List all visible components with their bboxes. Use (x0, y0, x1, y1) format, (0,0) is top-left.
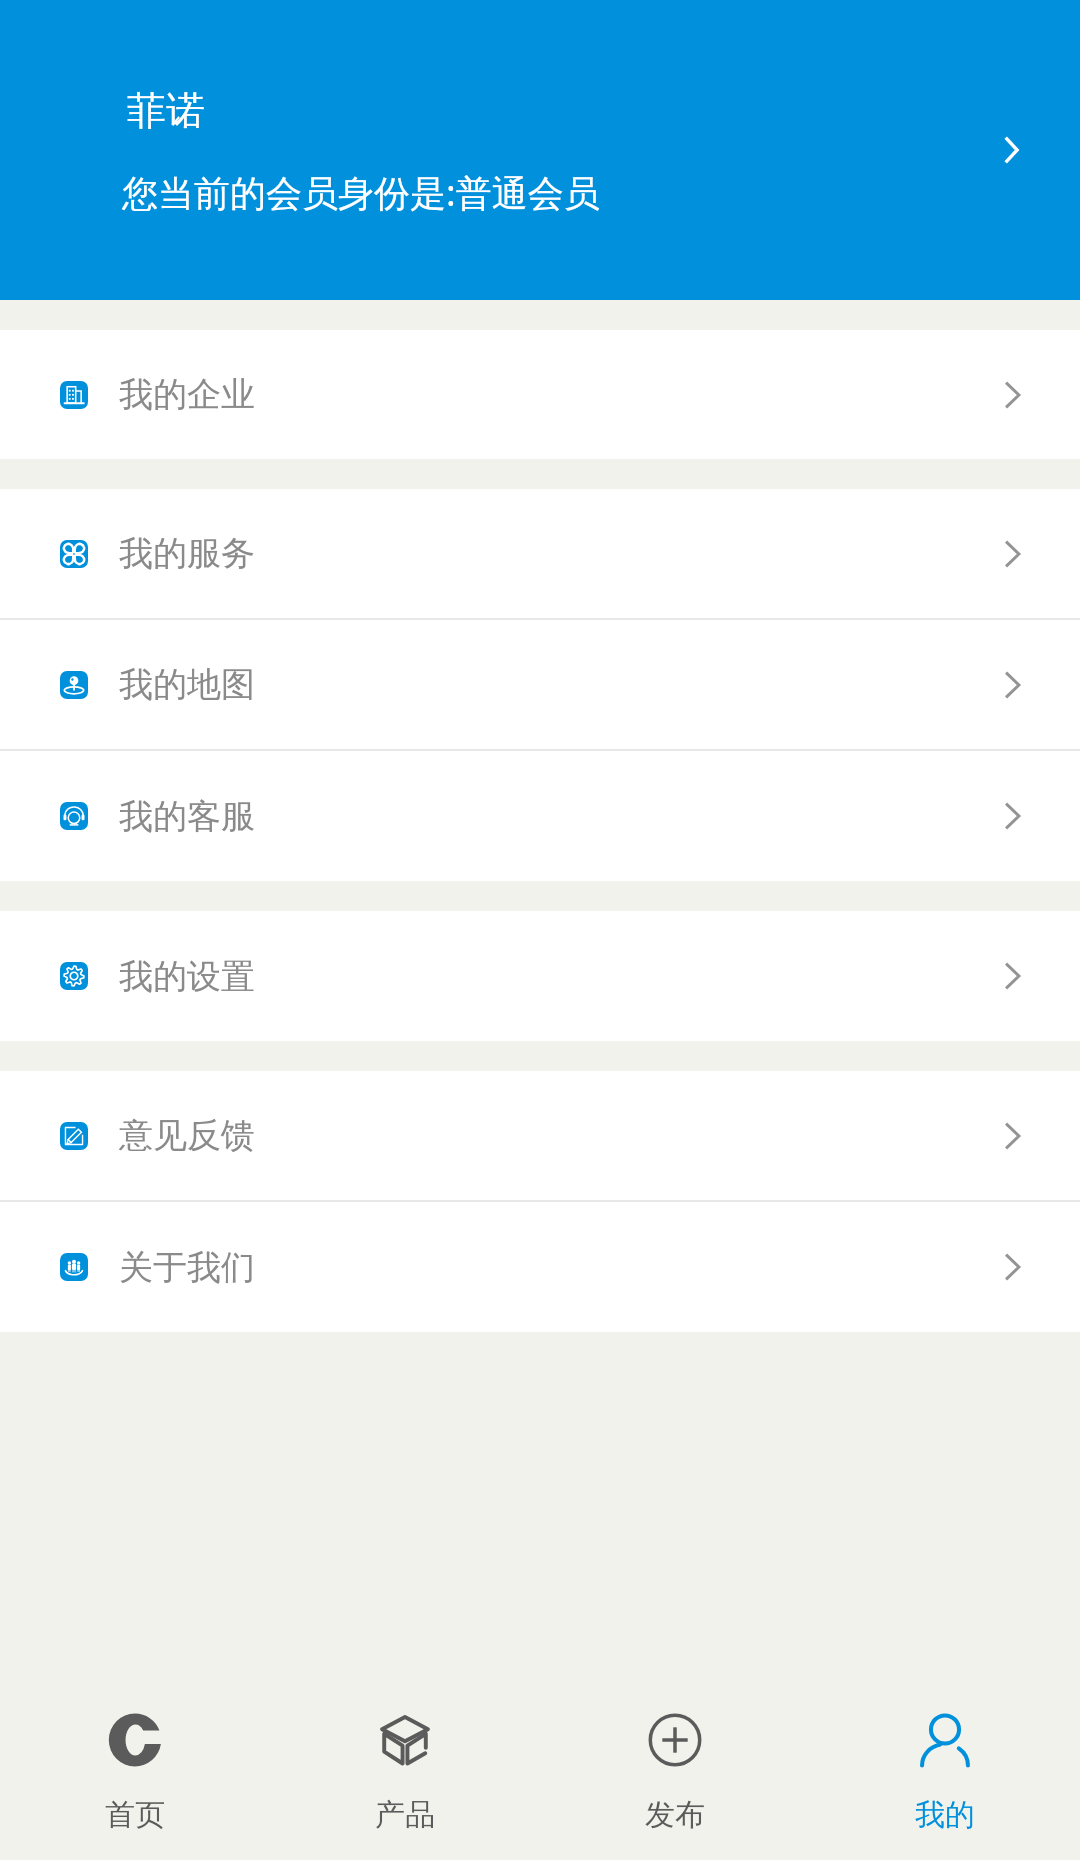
staticText: 我的设置 (119, 955, 255, 998)
button[interactable]: 我的设置 (0, 911, 1080, 1041)
button[interactable]: 我的地图 (0, 620, 1080, 749)
button[interactable]: 关于我们 (0, 1202, 1080, 1332)
button[interactable]: 菲诺 (0, 0, 1080, 300)
button[interactable]: 我的 (810, 1660, 1080, 1860)
button[interactable]: 我的服务 (0, 489, 1080, 618)
staticText: 产品 (375, 1796, 435, 1834)
button[interactable]: 发布 (540, 1660, 810, 1860)
staticText: 您当前的会员身份是:普通会员 (122, 168, 600, 217)
staticText: 意见反馈 (119, 1114, 255, 1157)
button[interactable]: 会员详情 (984, 122, 1040, 178)
button[interactable]: 我的客服 (0, 751, 1080, 881)
button[interactable]: 首页 (0, 1660, 270, 1860)
staticText: 我的企业 (119, 373, 255, 416)
button[interactable]: 产品 (270, 1660, 540, 1860)
staticText: 我的客服 (119, 795, 255, 838)
button[interactable]: 意见反馈 (0, 1071, 1080, 1200)
button[interactable]: 我的企业 (0, 330, 1080, 459)
staticText: 发布 (645, 1796, 705, 1834)
staticText: 首页 (105, 1796, 165, 1834)
staticText: 我的 (915, 1796, 975, 1834)
staticText: 关于我们 (119, 1246, 255, 1289)
staticText: 我的地图 (119, 663, 255, 706)
staticText: 菲诺 (127, 86, 205, 135)
staticText: 我的服务 (119, 532, 255, 575)
